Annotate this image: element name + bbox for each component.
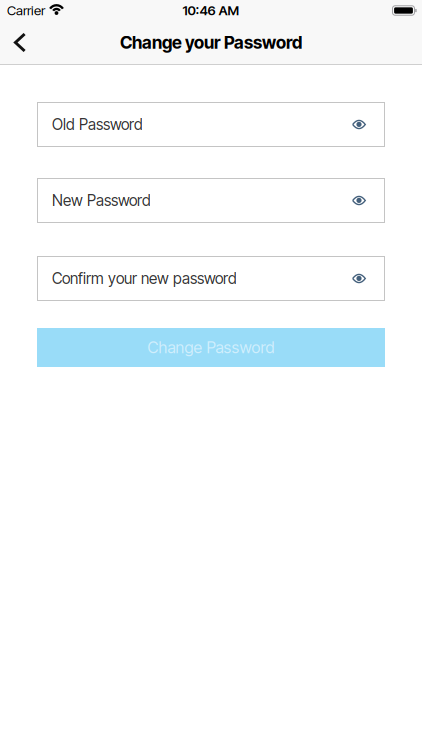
staticText: Change Password bbox=[147, 338, 274, 357]
staticText: New Password bbox=[52, 191, 151, 210]
staticText: 10:46 AM bbox=[182, 2, 239, 18]
staticText: Old Password bbox=[52, 115, 143, 134]
staticText: Change your Password bbox=[120, 32, 302, 53]
staticText: Carrier bbox=[7, 2, 45, 18]
staticText: Confirm your new password bbox=[52, 269, 237, 288]
